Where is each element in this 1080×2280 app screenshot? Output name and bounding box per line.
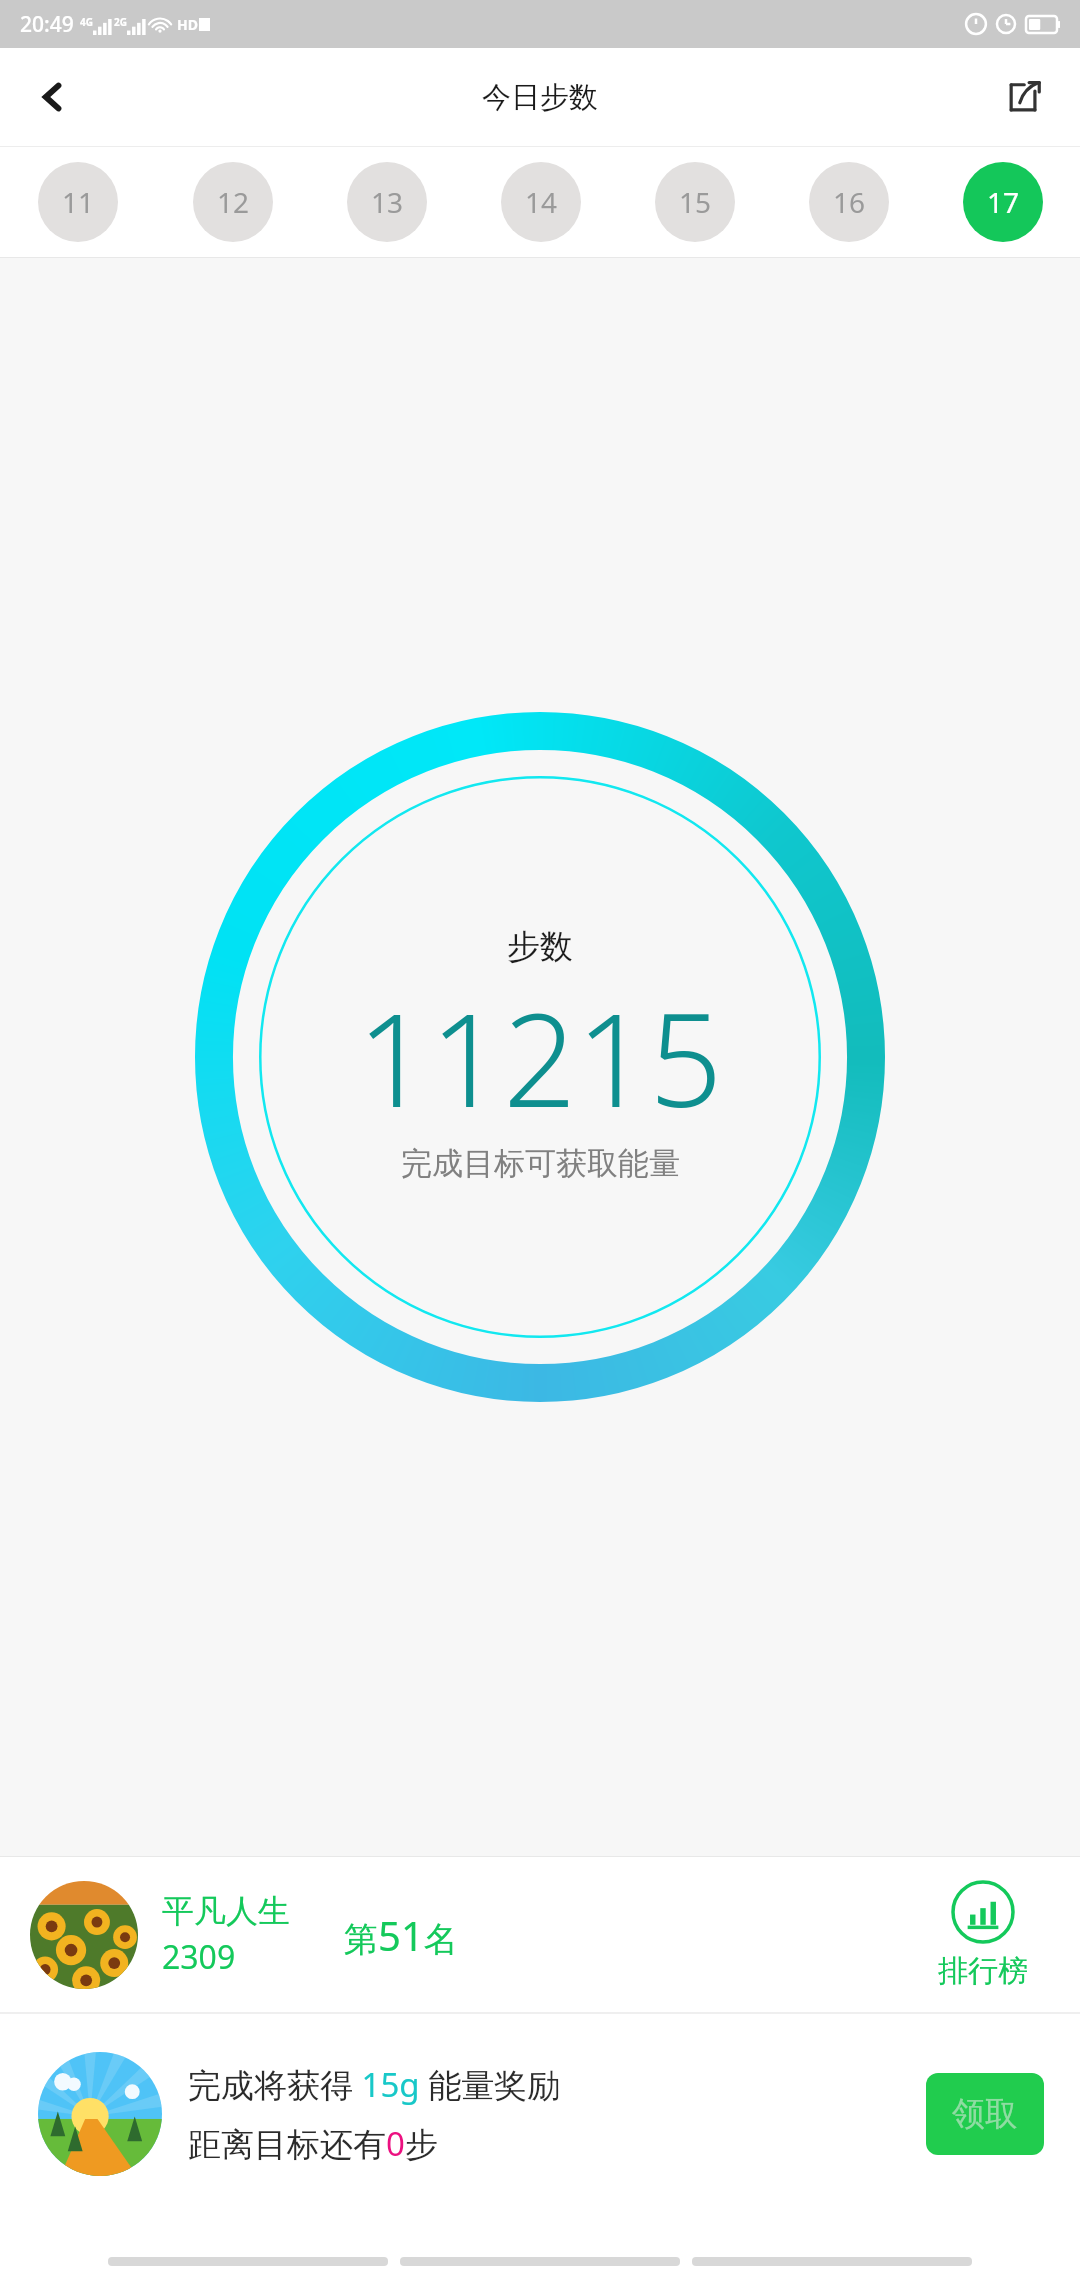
staticText: 步数	[507, 926, 573, 968]
staticText: 平凡人生	[162, 1891, 290, 1931]
button[interactable]: 16	[809, 162, 889, 242]
staticText: 第51名	[344, 1908, 458, 1962]
button[interactable]: 排行榜	[938, 1880, 1028, 1990]
staticText: 20:49	[20, 10, 74, 39]
staticText: 12	[217, 183, 250, 221]
staticText: 排行榜	[938, 1952, 1028, 1990]
button[interactable]: 领取	[926, 2073, 1044, 2155]
staticText: 完成将获得 15g 能量奖励	[188, 2062, 561, 2107]
staticText: 13	[371, 183, 404, 221]
staticText: 17	[987, 183, 1020, 221]
staticText: 2309	[162, 1935, 236, 1979]
button[interactable]: Share	[996, 66, 1058, 128]
staticText: 领取	[952, 2093, 1018, 2135]
button[interactable]: 11	[38, 162, 118, 242]
button[interactable]: 13	[347, 162, 427, 242]
button[interactable]: 15	[655, 162, 735, 242]
staticText: 今日步数	[482, 79, 598, 116]
staticText: 11215	[357, 970, 723, 1144]
staticText: HD	[177, 15, 198, 34]
staticText: 11	[62, 183, 95, 221]
button[interactable]: 17	[963, 162, 1043, 242]
staticText: 完成目标可获取能量	[401, 1144, 680, 1183]
staticText: 4G	[80, 15, 93, 29]
staticText: 14	[525, 183, 558, 221]
staticText: 2G	[114, 15, 127, 29]
button[interactable]: Back	[22, 66, 84, 128]
button[interactable]: 14	[501, 162, 581, 242]
button[interactable]: 12	[193, 162, 273, 242]
staticText: 距离目标还有0步	[188, 2121, 438, 2166]
staticText: 15	[679, 183, 712, 221]
button[interactable]: 平凡人生	[0, 1857, 1080, 2012]
staticText: 16	[833, 183, 866, 221]
